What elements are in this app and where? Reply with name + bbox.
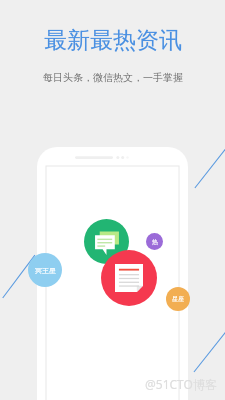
button[interactable]: 热 <box>146 233 163 250</box>
button[interactable]: 冥王星 <box>28 253 62 287</box>
button[interactable]: Messages <box>84 219 129 264</box>
staticText: 星座 <box>172 295 184 303</box>
staticText: 热 <box>152 238 158 246</box>
button[interactable] <box>37 147 188 400</box>
staticText: 冥王星 <box>35 266 56 275</box>
staticText: 每日头条，微信热文，一手掌握 <box>43 71 183 84</box>
staticText: 最新最热资讯 <box>44 26 182 55</box>
button[interactable]: 星座 <box>166 287 190 311</box>
staticText: @51CTO博客 <box>145 376 217 392</box>
button[interactable]: Articles <box>101 250 157 306</box>
